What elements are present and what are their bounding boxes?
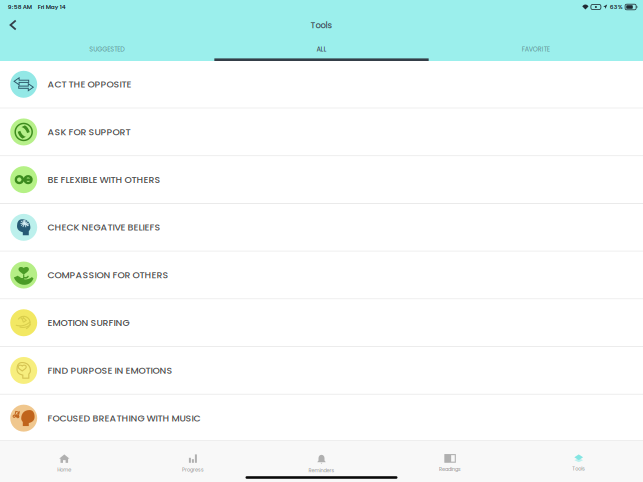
button[interactable]: FOCUSED BREATHING WITH MUSIC (0, 395, 643, 442)
staticText: Readings (439, 466, 461, 473)
button[interactable]: FIND PURPOSE IN EMOTIONS (0, 347, 643, 395)
staticText: ASK FOR SUPPORT (48, 125, 131, 138)
staticText: 9:58 AM (8, 3, 32, 11)
button[interactable]: COMPASSION FOR OTHERS (0, 252, 643, 299)
staticText: ALL (316, 45, 326, 54)
button[interactable]: BE FLEXIBLE WITH OTHERS (0, 156, 643, 204)
staticText: FOCUSED BREATHING WITH MUSIC (48, 412, 201, 425)
button[interactable]: Home (0, 441, 129, 471)
staticText: EMOTION SURFING (48, 316, 130, 329)
staticText: FIND PURPOSE IN EMOTIONS (48, 364, 173, 377)
staticText: CHECK NEGATIVE BELIEFS (48, 221, 161, 234)
staticText: BE FLEXIBLE WITH OTHERS (48, 173, 161, 186)
staticText: Fri May 14 (38, 3, 66, 11)
button[interactable]: Progress (129, 441, 257, 471)
staticText: FAVORITE (522, 45, 550, 54)
button[interactable]: FAVORITE (429, 40, 643, 61)
staticText: Tools (310, 19, 332, 31)
staticText: Tools (572, 465, 585, 472)
button[interactable]: Reminders (257, 441, 386, 471)
button[interactable]: Tools (514, 441, 643, 471)
button[interactable]: ACT THE OPPOSITE (0, 61, 643, 109)
staticText: COMPASSION FOR OTHERS (48, 268, 169, 282)
button[interactable]: CHECK NEGATIVE BELIEFS (0, 204, 643, 252)
button[interactable]: SUGGESTED (0, 40, 214, 61)
button[interactable]: EMOTION SURFING (0, 299, 643, 347)
button[interactable]: Back (0, 16, 29, 38)
staticText: Home (57, 466, 71, 473)
button[interactable]: ASK FOR SUPPORT (0, 109, 643, 156)
button[interactable]: ALL (214, 40, 429, 61)
staticText: Reminders (308, 467, 334, 474)
staticText: SUGGESTED (89, 45, 125, 54)
staticText: Progress (182, 466, 204, 473)
button[interactable]: Readings (386, 441, 514, 471)
staticText: ACT THE OPPOSITE (48, 78, 132, 91)
staticText: 63% (610, 3, 623, 11)
